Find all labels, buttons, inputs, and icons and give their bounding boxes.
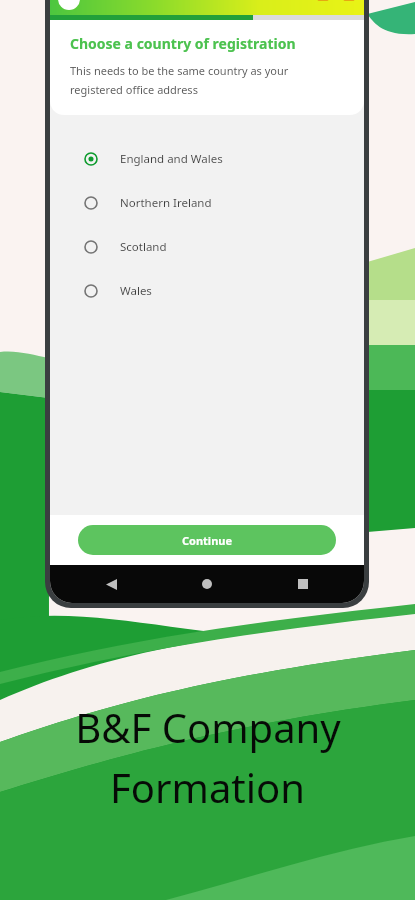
staticText: Wales [120,283,152,299]
staticText: Formation [110,760,305,814]
staticText: B&F Company [75,700,341,754]
staticText: Northern Ireland [120,195,212,211]
button[interactable]: Profile [58,0,80,10]
button[interactable]: Recent apps [290,571,316,597]
button[interactable]: Home [194,571,220,597]
button[interactable]: Action [342,0,356,6]
staticText: Choose a country of registration [70,34,296,53]
button[interactable]: Scotland [50,225,364,269]
button[interactable]: Action [316,0,330,6]
staticText: Continue [182,533,233,548]
staticText: England and Wales [120,151,223,167]
button[interactable]: Wales [50,269,364,313]
button[interactable]: Continue [78,525,336,555]
staticText: This needs to be the same country as you… [70,63,344,97]
button[interactable]: Northern Ireland [50,181,364,225]
button[interactable]: England and Wales [50,137,364,181]
staticText: Scotland [120,239,167,255]
button[interactable]: Back [98,571,124,597]
